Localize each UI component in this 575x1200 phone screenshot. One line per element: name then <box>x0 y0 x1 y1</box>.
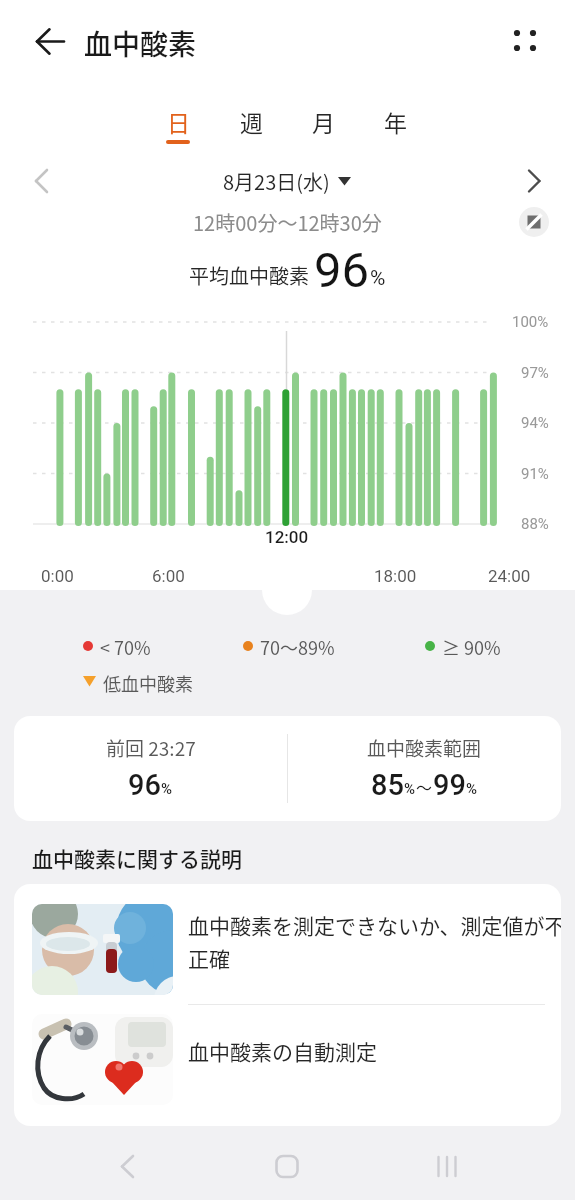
staticText: < 70% <box>100 634 151 658</box>
staticText: 血中酸素 <box>84 23 197 64</box>
staticText: 0:00 <box>41 566 74 586</box>
staticText: % <box>161 780 173 798</box>
button[interactable] <box>422 1141 472 1191</box>
staticText: 18:00 <box>374 566 417 586</box>
staticText: 12:00 <box>265 527 309 547</box>
staticText: 週 <box>240 105 263 138</box>
staticText: 91% <box>521 465 549 483</box>
staticText: ～ <box>416 775 433 798</box>
staticText: 前回 23:27 <box>106 734 196 762</box>
button[interactable] <box>24 163 60 199</box>
staticText: 94% <box>521 414 549 432</box>
staticText: 正確 <box>188 943 230 973</box>
staticText: 血中酸素の自動測定 <box>188 1036 377 1064</box>
staticText: 血中酸素に関する説明 <box>32 843 242 873</box>
button[interactable] <box>519 207 549 237</box>
button[interactable] <box>515 163 551 199</box>
staticText: 100% <box>512 313 549 331</box>
button[interactable] <box>262 1141 312 1191</box>
staticText: 年 <box>384 105 407 138</box>
staticText: 日 <box>167 105 190 138</box>
staticText: 8月23日(水) <box>223 167 330 196</box>
button[interactable] <box>20 24 72 62</box>
button[interactable]: 日 <box>150 98 206 144</box>
staticText: 85 <box>371 768 404 802</box>
staticText: 70～89% <box>260 634 335 658</box>
button[interactable]: 週 <box>223 98 279 144</box>
staticText: % <box>466 780 478 798</box>
staticText: 月 <box>312 105 335 138</box>
button[interactable] <box>14 1005 561 1126</box>
button[interactable]: 月 <box>295 98 351 144</box>
button[interactable]: 前回 23:27 <box>14 716 561 821</box>
staticText: 血中酸素を測定できないか、測定値が不 <box>188 910 561 940</box>
button[interactable] <box>500 16 552 66</box>
staticText: ≥ 90% <box>442 634 501 658</box>
staticText: 血中酸素範囲 <box>367 734 482 762</box>
staticText: 平均血中酸素 <box>189 261 309 290</box>
staticText: 12時00分～12時30分 <box>193 208 382 237</box>
staticText: 24:00 <box>488 566 531 586</box>
staticText: 6:00 <box>152 566 185 586</box>
staticText: 96 <box>128 768 161 802</box>
staticText: 97% <box>521 364 549 382</box>
button[interactable] <box>14 884 561 1004</box>
staticText: % <box>404 780 416 798</box>
staticText: 96 <box>314 242 370 299</box>
staticText: 低血中酸素 <box>103 670 193 694</box>
staticText: 99 <box>433 768 466 802</box>
button[interactable] <box>103 1141 153 1191</box>
staticText: % <box>370 266 386 291</box>
button[interactable]: 年 <box>367 98 423 144</box>
button[interactable]: 8月23日(水) <box>223 167 352 196</box>
staticText: 88% <box>521 515 549 533</box>
